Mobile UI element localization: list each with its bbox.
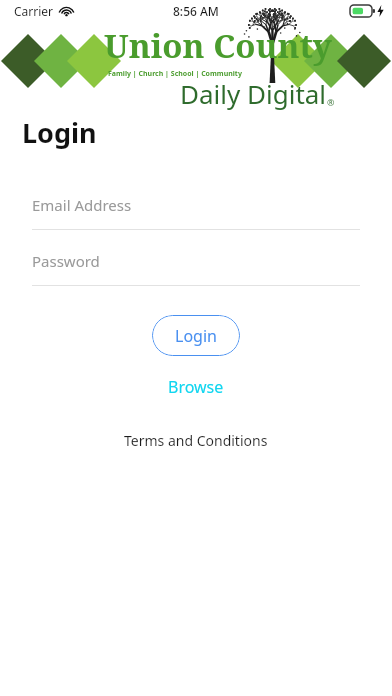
staticText: ® xyxy=(327,96,335,108)
button[interactable]: Terms and Conditions xyxy=(110,427,282,454)
staticText: Login xyxy=(22,114,97,151)
staticText: Login xyxy=(175,325,217,347)
staticText: Union County xyxy=(104,23,332,68)
button[interactable]: Email Address xyxy=(32,195,360,230)
staticText: Email Address xyxy=(32,195,132,215)
staticText: 8:56 AM xyxy=(173,3,219,19)
staticText: Family | Church | School | Community xyxy=(108,69,242,79)
staticText: Carrier xyxy=(14,3,54,19)
staticText: Password xyxy=(32,251,100,271)
button[interactable]: Browse xyxy=(150,372,242,402)
button[interactable]: Login xyxy=(152,315,240,356)
button[interactable]: Password xyxy=(32,251,360,286)
staticText: Terms and Conditions xyxy=(124,431,268,450)
staticText: Daily Digital xyxy=(180,76,327,111)
staticText: Browse xyxy=(168,376,224,398)
